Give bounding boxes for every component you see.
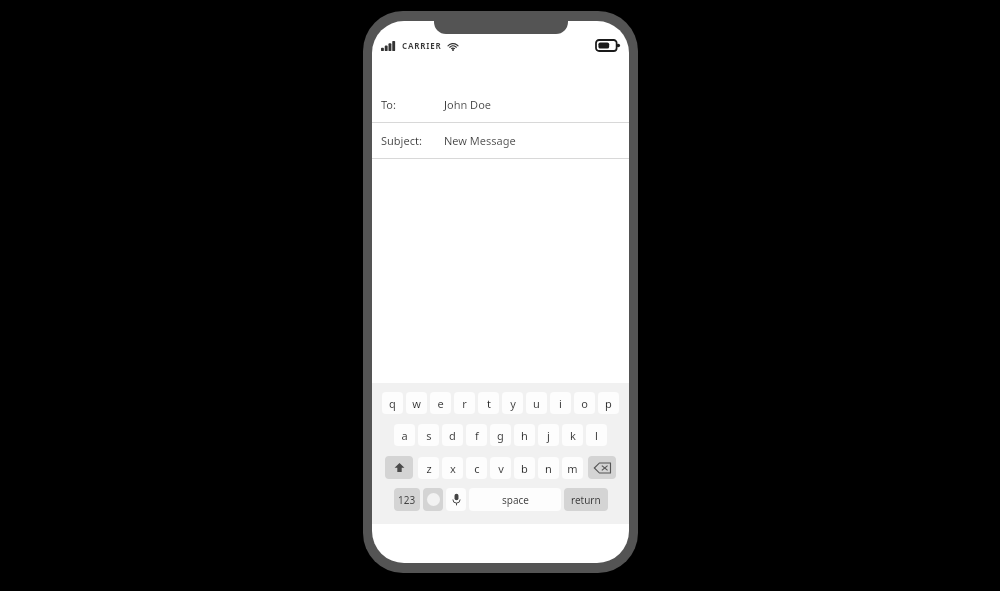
button[interactable]: Voice input xyxy=(446,488,466,511)
button[interactable]: o xyxy=(574,392,595,414)
staticText: p xyxy=(605,396,612,411)
button[interactable]: r xyxy=(454,392,475,414)
button[interactable]: g xyxy=(490,424,511,446)
button[interactable]: w xyxy=(406,392,427,414)
button[interactable]: s xyxy=(418,424,439,446)
button[interactable]: z xyxy=(418,457,439,479)
staticText: To: xyxy=(381,97,396,112)
button[interactable]: b xyxy=(514,457,535,479)
button[interactable]: e xyxy=(430,392,451,414)
button[interactable]: t xyxy=(478,392,499,414)
staticText: m xyxy=(567,461,578,476)
button[interactable]: m xyxy=(562,457,583,479)
button[interactable]: Subject: xyxy=(372,123,629,158)
button[interactable]: return xyxy=(564,488,608,511)
staticText: New Message xyxy=(444,133,516,148)
button[interactable]: j xyxy=(538,424,559,446)
button[interactable]: q xyxy=(382,392,403,414)
staticText: a xyxy=(401,428,408,443)
staticText: John Doe xyxy=(444,97,492,112)
staticText: n xyxy=(545,461,552,476)
button[interactable]: c xyxy=(466,457,487,479)
staticText: o xyxy=(581,396,588,411)
staticText: v xyxy=(498,461,504,476)
button[interactable]: k xyxy=(562,424,583,446)
button[interactable]: Backspace xyxy=(588,456,616,479)
staticText: y xyxy=(510,396,516,411)
button[interactable]: x xyxy=(442,457,463,479)
staticText: f xyxy=(475,428,479,443)
button[interactable]: n xyxy=(538,457,559,479)
staticText: l xyxy=(595,428,598,443)
staticText: 123 xyxy=(398,493,416,507)
staticText: space xyxy=(502,493,529,507)
button[interactable]: f xyxy=(466,424,487,446)
button[interactable]: y xyxy=(502,392,523,414)
staticText: h xyxy=(521,428,528,443)
staticText: g xyxy=(497,428,504,443)
staticText: q xyxy=(389,396,396,411)
staticText: x xyxy=(450,461,456,476)
staticText: i xyxy=(559,396,562,411)
staticText: j xyxy=(547,428,550,443)
button[interactable]: v xyxy=(490,457,511,479)
button[interactable]: a xyxy=(394,424,415,446)
staticText: s xyxy=(426,428,432,443)
button[interactable]: d xyxy=(442,424,463,446)
button[interactable]: To: xyxy=(372,87,629,122)
button[interactable]: l xyxy=(586,424,607,446)
staticText: k xyxy=(570,428,576,443)
staticText: r xyxy=(462,396,467,411)
staticText: w xyxy=(412,396,421,411)
staticText: c xyxy=(474,461,480,476)
button[interactable]: space xyxy=(469,488,561,511)
button[interactable]: Shift xyxy=(385,456,413,479)
staticText: d xyxy=(449,428,456,443)
button[interactable]: h xyxy=(514,424,535,446)
staticText: CARRIER xyxy=(402,40,442,51)
staticText: return xyxy=(571,493,601,507)
staticText: e xyxy=(437,396,444,411)
button[interactable]: 123 xyxy=(394,488,420,511)
button[interactable]: p xyxy=(598,392,619,414)
staticText: Subject: xyxy=(381,133,422,148)
button[interactable]: i xyxy=(550,392,571,414)
staticText: t xyxy=(487,396,491,411)
button[interactable]: u xyxy=(526,392,547,414)
staticText: z xyxy=(426,461,432,476)
button[interactable]: Switch keyboard xyxy=(423,488,443,511)
staticText: u xyxy=(533,396,540,411)
staticText: b xyxy=(521,461,528,476)
